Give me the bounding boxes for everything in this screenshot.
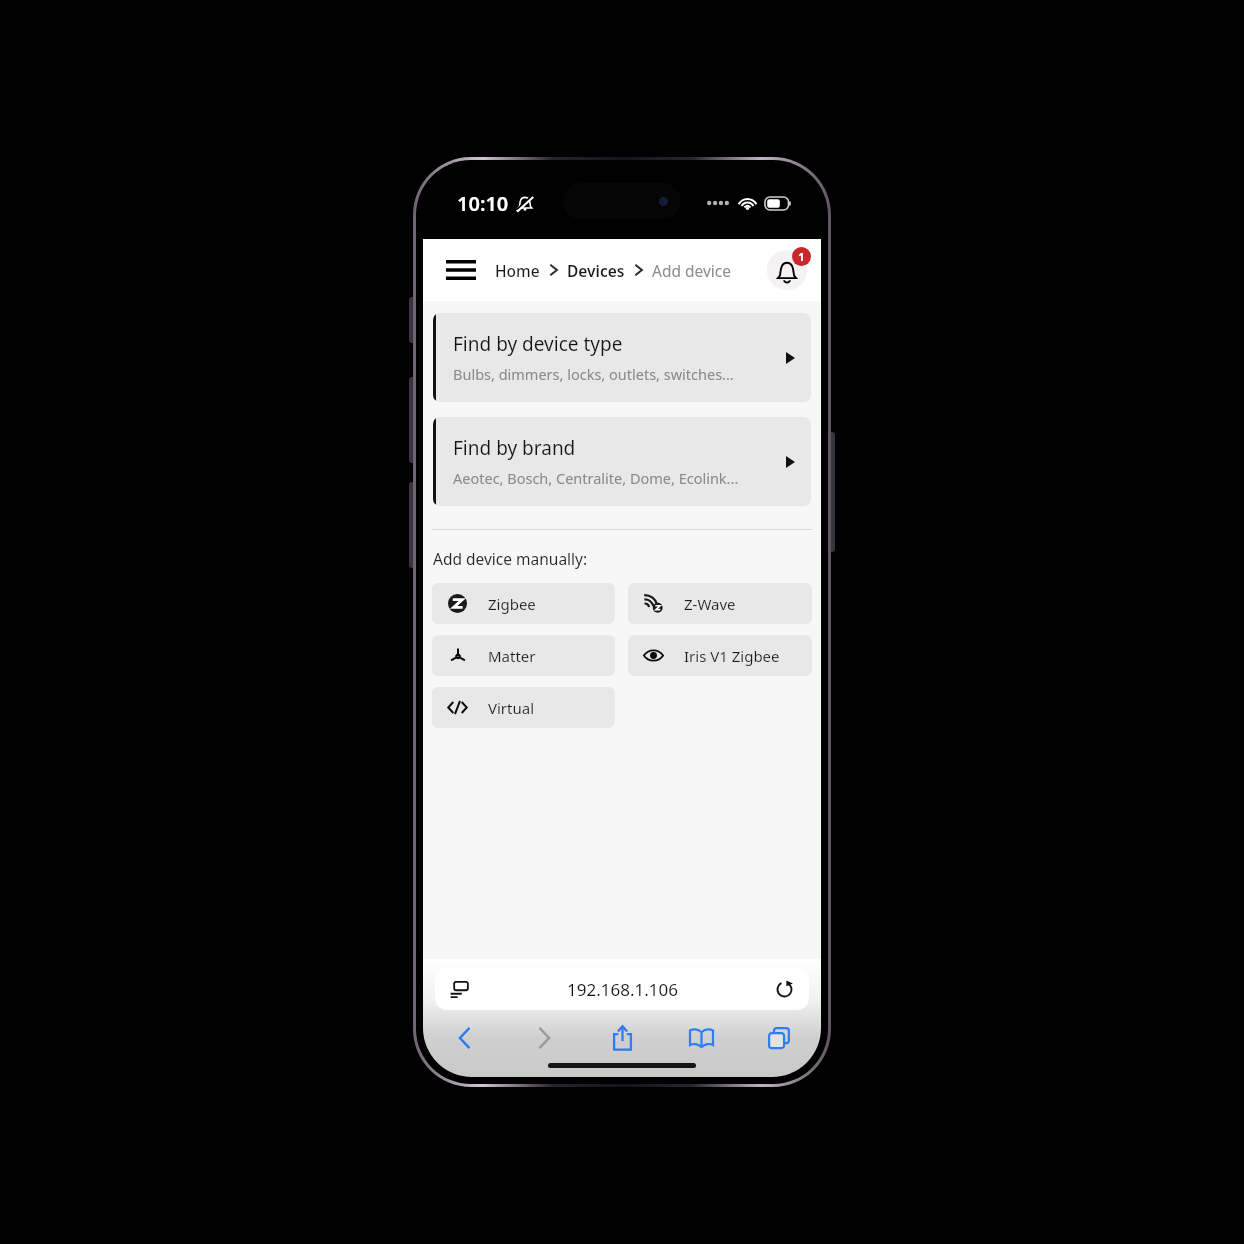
button[interactable]: Tabs	[753, 1020, 805, 1056]
staticText: Zigbee	[488, 594, 536, 614]
staticText: 1	[798, 249, 805, 264]
button[interactable]: Z-Wave	[628, 583, 812, 624]
button[interactable]: Virtual	[432, 687, 615, 728]
button[interactable]: Zigbee	[432, 583, 615, 624]
staticText: 192.168.1.106	[567, 978, 678, 1001]
button[interactable]: Menu	[441, 250, 481, 290]
button[interactable]: Devices	[567, 260, 625, 281]
staticText: Iris V1 Zigbee	[684, 646, 780, 666]
staticText: Bulbs, dimmers, locks, outlets, switches…	[453, 364, 734, 384]
button[interactable]: Home	[495, 260, 540, 281]
button[interactable]: Notifications	[765, 248, 809, 292]
button[interactable]: Find by device type	[433, 313, 811, 402]
button[interactable]: Bookmarks	[675, 1020, 727, 1056]
staticText: 10:10	[457, 190, 509, 217]
staticText: Matter	[488, 646, 536, 666]
staticText: Aeotec, Bosch, Centralite, Dome, Ecolink…	[453, 468, 739, 488]
staticText: Virtual	[488, 698, 535, 718]
staticText: Add device	[652, 260, 732, 281]
button[interactable]: Find by brand	[433, 417, 811, 506]
staticText: Z-Wave	[684, 594, 736, 614]
staticText: Find by device type	[453, 331, 623, 357]
staticText: Find by brand	[453, 435, 576, 461]
button[interactable]: Forward	[518, 1020, 570, 1056]
button[interactable]: Reload	[769, 974, 799, 1004]
button[interactable]: Back	[439, 1020, 491, 1056]
staticText: Add device manually:	[433, 548, 588, 569]
button[interactable]: Matter	[432, 635, 615, 676]
button[interactable]: Page settings	[444, 974, 474, 1004]
button[interactable]: Page settings	[435, 968, 809, 1010]
button[interactable]: Share	[596, 1020, 648, 1056]
button[interactable]: Iris V1 Zigbee	[628, 635, 812, 676]
